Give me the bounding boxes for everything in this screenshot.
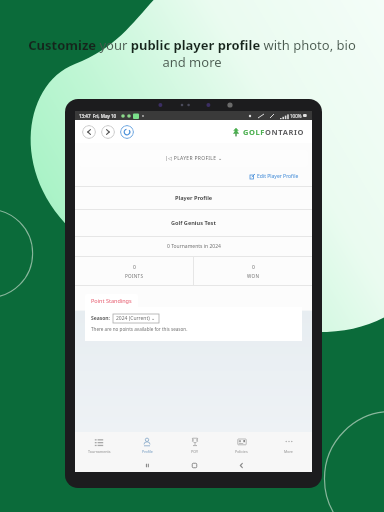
- staticText: 0: [252, 264, 255, 271]
- button[interactable]: 0 Tournaments in 2024: [75, 237, 312, 256]
- staticText: 0 Tournaments in 2024: [167, 243, 221, 250]
- staticText: Profile: [142, 449, 153, 454]
- button[interactable]: More: [265, 432, 312, 458]
- button[interactable]: Home: [171, 458, 218, 472]
- button[interactable]: POY: [171, 432, 218, 458]
- staticText: WON: [247, 273, 260, 279]
- button[interactable]: Back: [218, 458, 265, 472]
- button[interactable]: Player Profile: [75, 187, 312, 209]
- button[interactable]: GOLFONTARIO: [231, 127, 305, 137]
- staticText: GOLFONTARIO: [243, 127, 305, 137]
- staticText: POY: [191, 449, 198, 454]
- staticText: 100%: [290, 113, 302, 119]
- staticText: |◁ PLAYER PROFILE ⌄: [165, 155, 223, 162]
- staticText: 2024 (Current) ⌄: [116, 315, 156, 322]
- staticText: More: [284, 449, 293, 454]
- staticText: Tournaments: [88, 449, 111, 454]
- button[interactable]: Reload: [120, 125, 134, 139]
- staticText: Customize your public player profile wit…: [26, 36, 358, 71]
- button[interactable]: 0: [194, 257, 312, 285]
- staticText: 13:47 Fri, May 10: [79, 113, 117, 119]
- button[interactable]: 2024 (Current) ⌄: [113, 314, 159, 323]
- staticText: POINTS: [125, 273, 144, 279]
- button[interactable]: Point Standings: [85, 294, 138, 307]
- staticText: Player Profile: [175, 194, 213, 202]
- button[interactable]: Edit Player Profile: [247, 172, 302, 181]
- staticText: There are no points available for this s…: [91, 326, 188, 332]
- button[interactable]: Tournaments: [75, 432, 123, 458]
- button[interactable]: Back: [82, 125, 96, 139]
- staticText: Point Standings: [91, 297, 132, 304]
- button[interactable]: 0: [75, 257, 193, 285]
- button[interactable]: Policies: [218, 432, 265, 458]
- button[interactable]: Golf Genius Test: [75, 210, 312, 236]
- button[interactable]: |◁ PLAYER PROFILE ⌄: [79, 150, 308, 167]
- staticText: Edit Player Profile: [257, 173, 299, 180]
- button[interactable]: Profile: [123, 432, 171, 458]
- staticText: Golf Genius Test: [171, 219, 216, 227]
- staticText: Season:: [91, 315, 111, 322]
- button[interactable]: Forward: [101, 125, 115, 139]
- staticText: Policies: [235, 449, 248, 454]
- button[interactable]: Recents: [123, 458, 171, 472]
- staticText: 0: [133, 264, 136, 271]
